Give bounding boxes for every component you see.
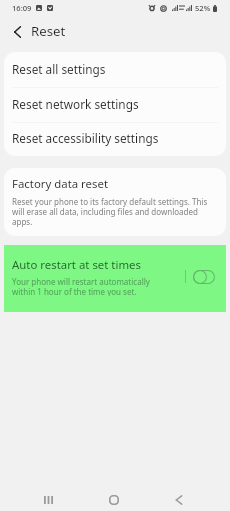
button[interactable]: Back xyxy=(146,482,211,511)
staticText: Auto restart at set times xyxy=(12,257,141,273)
staticText: Reset network settings xyxy=(12,96,139,112)
staticText: 52% xyxy=(195,3,211,13)
button[interactable]: Back xyxy=(5,20,29,44)
button[interactable]: Reset all settings xyxy=(4,52,226,87)
button[interactable]: Auto restart at set times xyxy=(4,245,226,312)
button[interactable]: Reset network settings xyxy=(4,87,226,122)
button[interactable]: Home xyxy=(81,482,146,511)
staticText: Factory data reset xyxy=(12,176,109,192)
staticText: Reset your phone to its factory default … xyxy=(12,196,218,227)
staticText: Your phone will restart automatically wi… xyxy=(12,276,167,296)
button[interactable]: Factory data reset xyxy=(4,168,226,236)
staticText: Reset accessibility settings xyxy=(12,130,159,146)
staticText: Reset all settings xyxy=(12,61,106,77)
button[interactable]: Auto restart toggle xyxy=(193,270,215,284)
staticText: 16:09 xyxy=(12,3,32,13)
button[interactable]: Reset accessibility settings xyxy=(4,122,226,156)
button[interactable]: Recents xyxy=(16,482,81,511)
staticText: Reset xyxy=(31,22,66,40)
